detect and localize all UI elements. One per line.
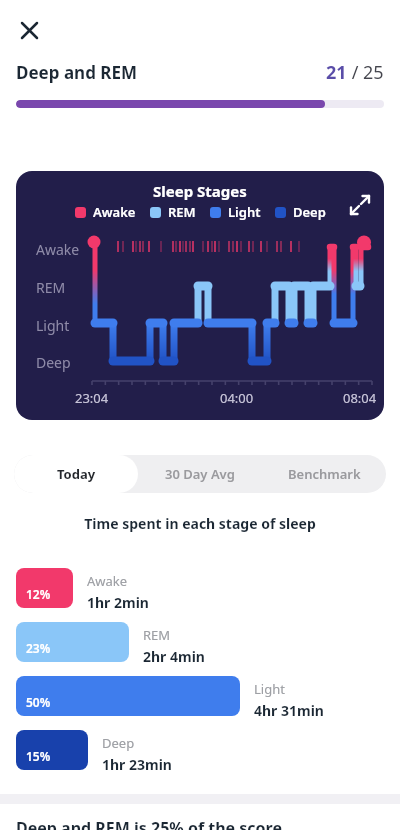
staticText: REM [36,278,66,297]
staticText: Deep and REM is 25% of the score [16,817,283,830]
staticText: Awake [36,240,80,259]
staticText: 04:00 [220,389,254,407]
staticText: 08:04 [343,389,377,407]
staticText: Light [228,203,261,221]
staticText: Deep [36,353,71,372]
staticText: Light [36,316,70,335]
staticText: 4hr 31min [254,701,324,720]
staticText: Today [57,465,96,483]
staticText: Deep and REM [16,61,138,84]
staticText: 23% [26,640,51,656]
button[interactable]: Benchmark [262,455,386,493]
staticText: 50% [26,694,51,710]
staticText: REM [143,626,171,644]
button[interactable] [9,10,49,50]
staticText: 2hr 4min [143,647,205,666]
staticText: 30 Day Avg [165,465,235,483]
staticText: REM [168,203,196,221]
staticText: Sleep Stages [153,181,247,201]
staticText: Deep [293,203,326,221]
staticText: 1hr 23min [102,755,172,774]
staticText: / 25 [347,60,384,85]
staticText: Light [254,680,285,698]
staticText: Deep [102,734,135,752]
staticText: 15% [26,748,51,764]
staticText: Awake [87,572,128,590]
staticText: 21 [326,60,347,85]
staticText: 23:04 [75,389,109,407]
staticText: 1hr 2min [87,593,149,612]
staticText: Benchmark [288,465,361,483]
button[interactable]: Today [14,455,138,493]
staticText: 12% [26,586,51,602]
staticText: Awake [93,203,136,221]
staticText: Time spent in each stage of sleep [0,514,400,533]
button[interactable]: 30 Day Avg [138,455,262,493]
button[interactable] [342,187,378,223]
